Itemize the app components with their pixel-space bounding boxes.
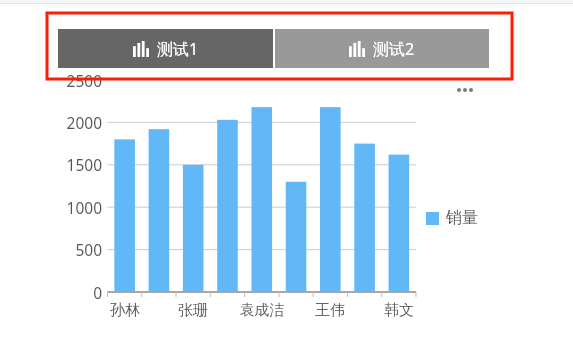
staticText: 张珊	[158, 301, 228, 320]
staticText: 0	[51, 282, 102, 303]
staticText: 2500	[51, 70, 102, 91]
button[interactable]: 销量	[426, 208, 478, 228]
staticText: 测试1	[157, 38, 199, 60]
staticText: 孙林	[90, 301, 160, 320]
button[interactable]: More options	[457, 88, 473, 92]
staticText: 测试2	[373, 38, 415, 60]
staticText: 500	[51, 239, 102, 260]
staticText: 1000	[51, 197, 102, 218]
staticText: 1500	[51, 154, 102, 175]
staticText: 韩文	[364, 301, 434, 320]
button[interactable]: 测试2	[275, 29, 489, 68]
staticText: 袁成洁	[227, 301, 297, 320]
staticText: 2000	[51, 112, 102, 133]
staticText: 销量	[446, 208, 478, 228]
staticText: 王伟	[295, 301, 365, 320]
button[interactable]: 测试1	[58, 29, 273, 68]
